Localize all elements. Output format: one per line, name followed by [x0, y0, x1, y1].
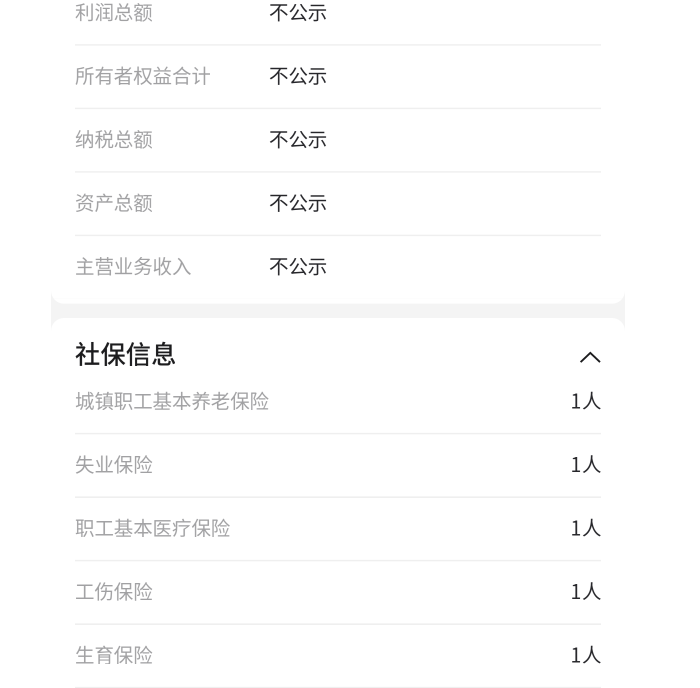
- staticText: 城镇职工基本养老保险: [75, 386, 269, 414]
- staticText: 所有者权益合计: [75, 61, 210, 89]
- button[interactable]: 所有者权益合计: [51, 46, 625, 108]
- button[interactable]: 主营业务收入: [51, 236, 625, 298]
- staticText: 主营业务收入: [75, 251, 191, 279]
- staticText: 1人: [571, 640, 601, 668]
- staticText: 不公示: [269, 61, 327, 89]
- button[interactable]: 社保信息: [51, 318, 625, 371]
- button[interactable]: 工伤保险: [51, 561, 625, 623]
- staticText: 1人: [571, 513, 601, 541]
- button[interactable]: 职工基本医疗保险: [51, 498, 625, 560]
- staticText: 资产总额: [75, 188, 152, 216]
- staticText: 不公示: [269, 124, 327, 152]
- staticText: 利润总额: [75, 0, 152, 25]
- button[interactable]: 生育保险: [51, 625, 625, 687]
- staticText: 生育保险: [75, 640, 152, 668]
- staticText: 1人: [571, 576, 601, 605]
- button[interactable]: 纳税总额: [51, 109, 625, 171]
- staticText: 纳税总额: [75, 124, 152, 152]
- staticText: 社保信息: [75, 334, 176, 371]
- staticText: 1人: [571, 386, 601, 414]
- staticText: 不公示: [269, 251, 327, 279]
- staticText: 工伤保险: [75, 576, 152, 605]
- staticText: 1人: [571, 449, 601, 478]
- button[interactable]: 失业保险: [51, 434, 625, 496]
- staticText: 不公示: [269, 0, 327, 25]
- button[interactable]: 城镇职工基本养老保险: [51, 371, 625, 433]
- staticText: 不公示: [269, 188, 327, 216]
- button[interactable]: 利润总额: [51, 0, 625, 44]
- staticText: 职工基本医疗保险: [75, 513, 230, 541]
- button[interactable]: 资产总额: [51, 173, 625, 235]
- staticText: 失业保险: [75, 449, 152, 478]
